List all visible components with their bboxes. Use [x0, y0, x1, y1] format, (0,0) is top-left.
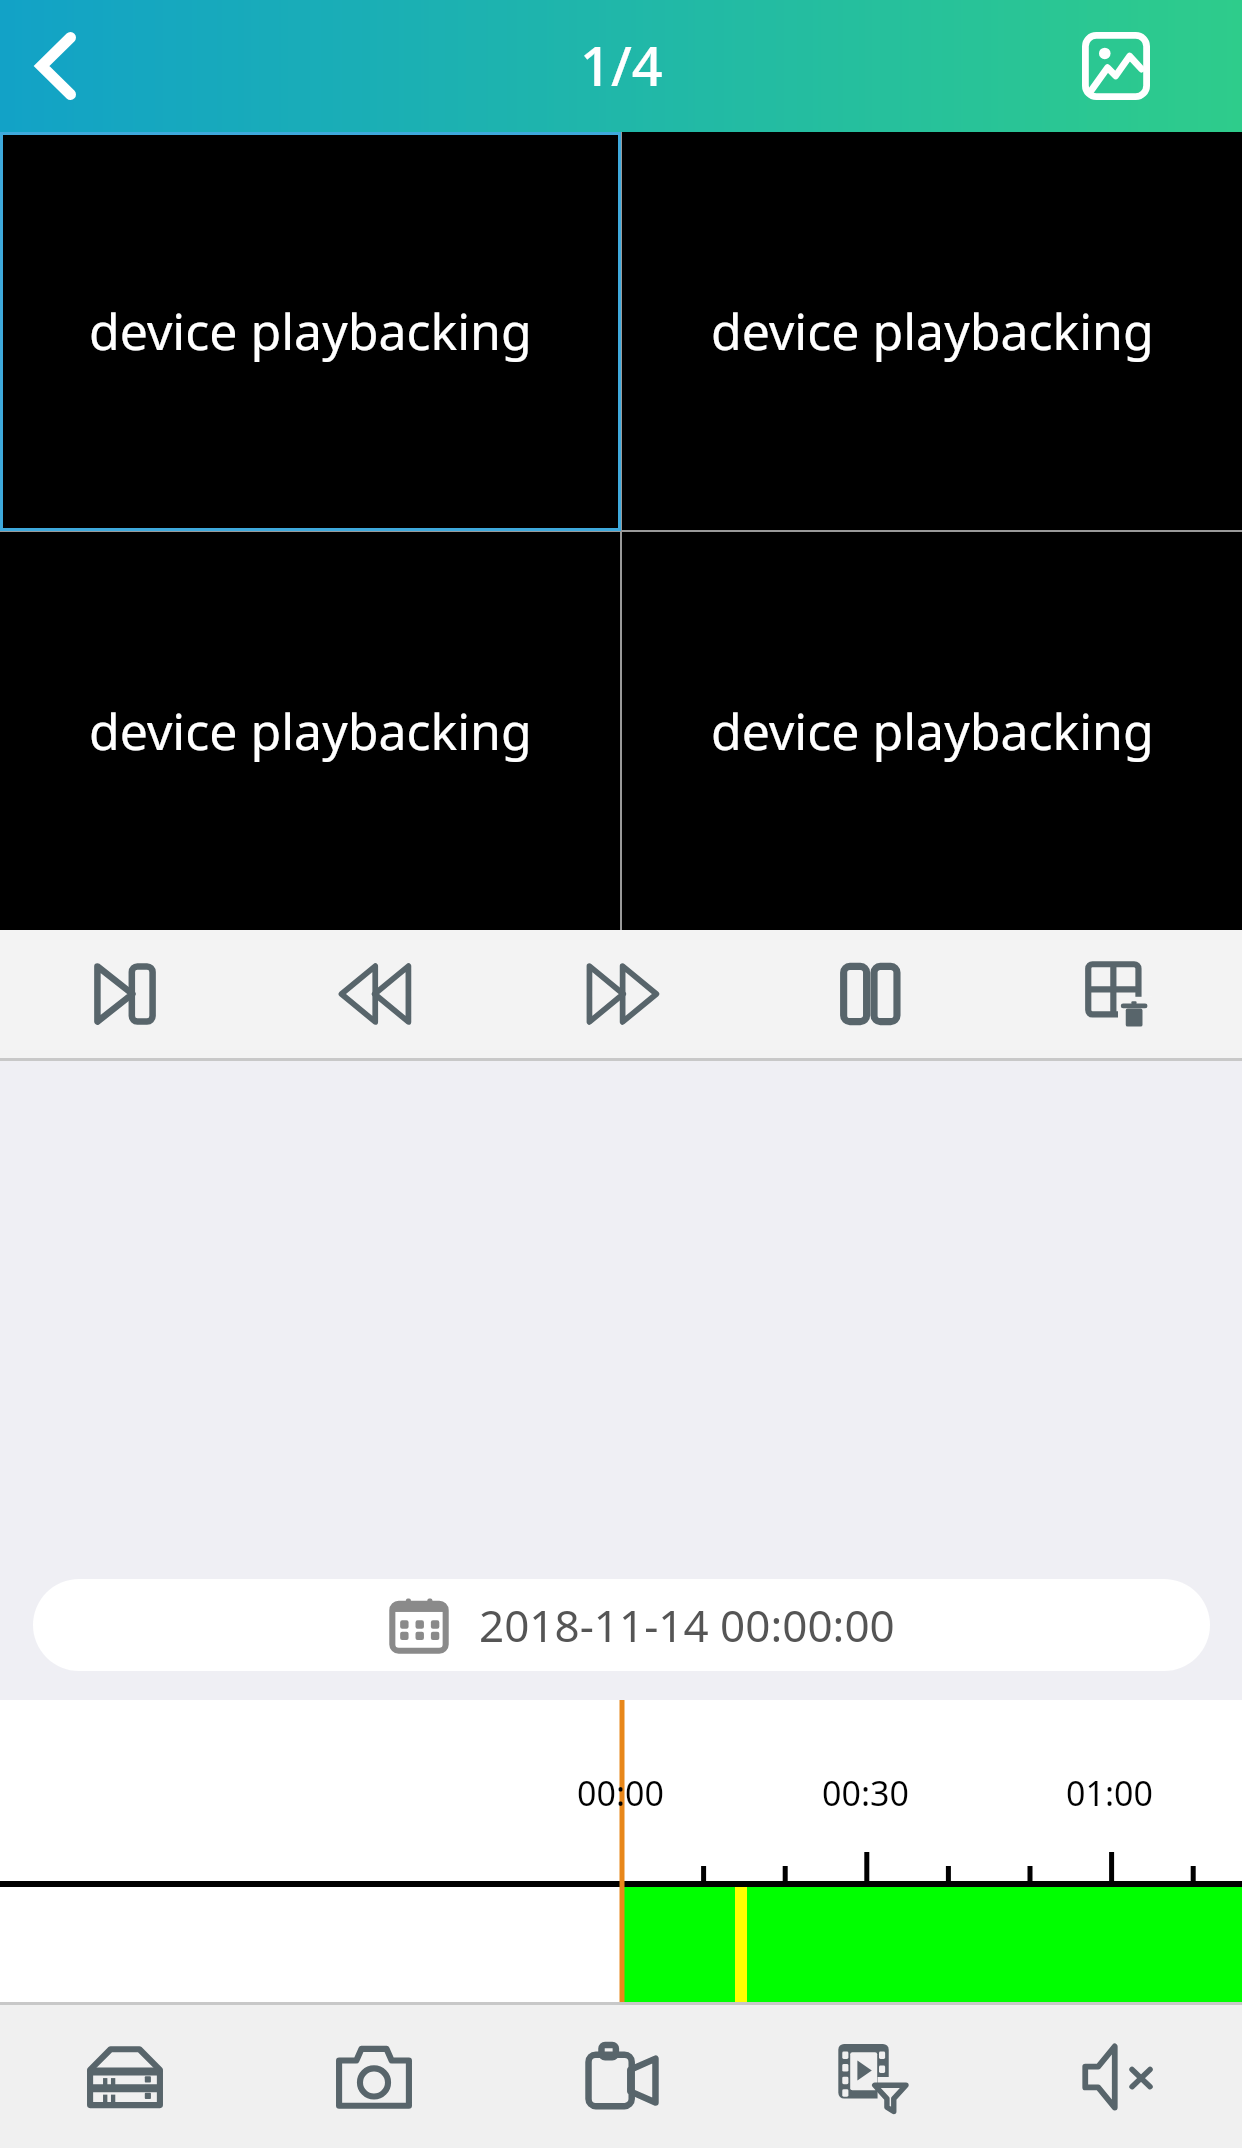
button[interactable]: device playbacking — [0, 532, 620, 930]
staticText: device playbacking — [89, 697, 532, 765]
button[interactable]: Rewind — [249, 930, 498, 1058]
button[interactable]: 2018-11-14 00:00:00 — [33, 1579, 1210, 1671]
button[interactable]: Fast forward — [498, 930, 746, 1058]
button[interactable]: Close all windows — [994, 930, 1242, 1058]
staticText: 01:00 — [1066, 1770, 1153, 1816]
button[interactable]: Record — [498, 2005, 746, 2148]
button[interactable]: Snapshot — [249, 2005, 498, 2148]
button[interactable]: device playbacking — [622, 132, 1242, 530]
button[interactable]: device playbacking — [622, 532, 1242, 930]
button[interactable]: Mute — [994, 2005, 1242, 2148]
staticText: 1/4 — [580, 28, 663, 102]
button[interactable]: Snapshots — [1082, 0, 1242, 132]
button[interactable]: Clip filter — [746, 2005, 994, 2148]
staticText: 00:30 — [822, 1770, 909, 1816]
staticText: device playbacking — [711, 297, 1154, 365]
staticText: device playbacking — [711, 697, 1154, 765]
button[interactable]: Pause — [746, 930, 994, 1058]
button[interactable]: device playbacking — [0, 132, 620, 530]
button[interactable]: Device list — [0, 2005, 249, 2148]
staticText: device playbacking — [89, 297, 532, 365]
button[interactable]: Next frame — [0, 930, 249, 1058]
staticText: 00:00 — [577, 1770, 664, 1816]
staticText: 2018-11-14 00:00:00 — [479, 1595, 895, 1655]
button[interactable]: Back — [0, 0, 112, 132]
